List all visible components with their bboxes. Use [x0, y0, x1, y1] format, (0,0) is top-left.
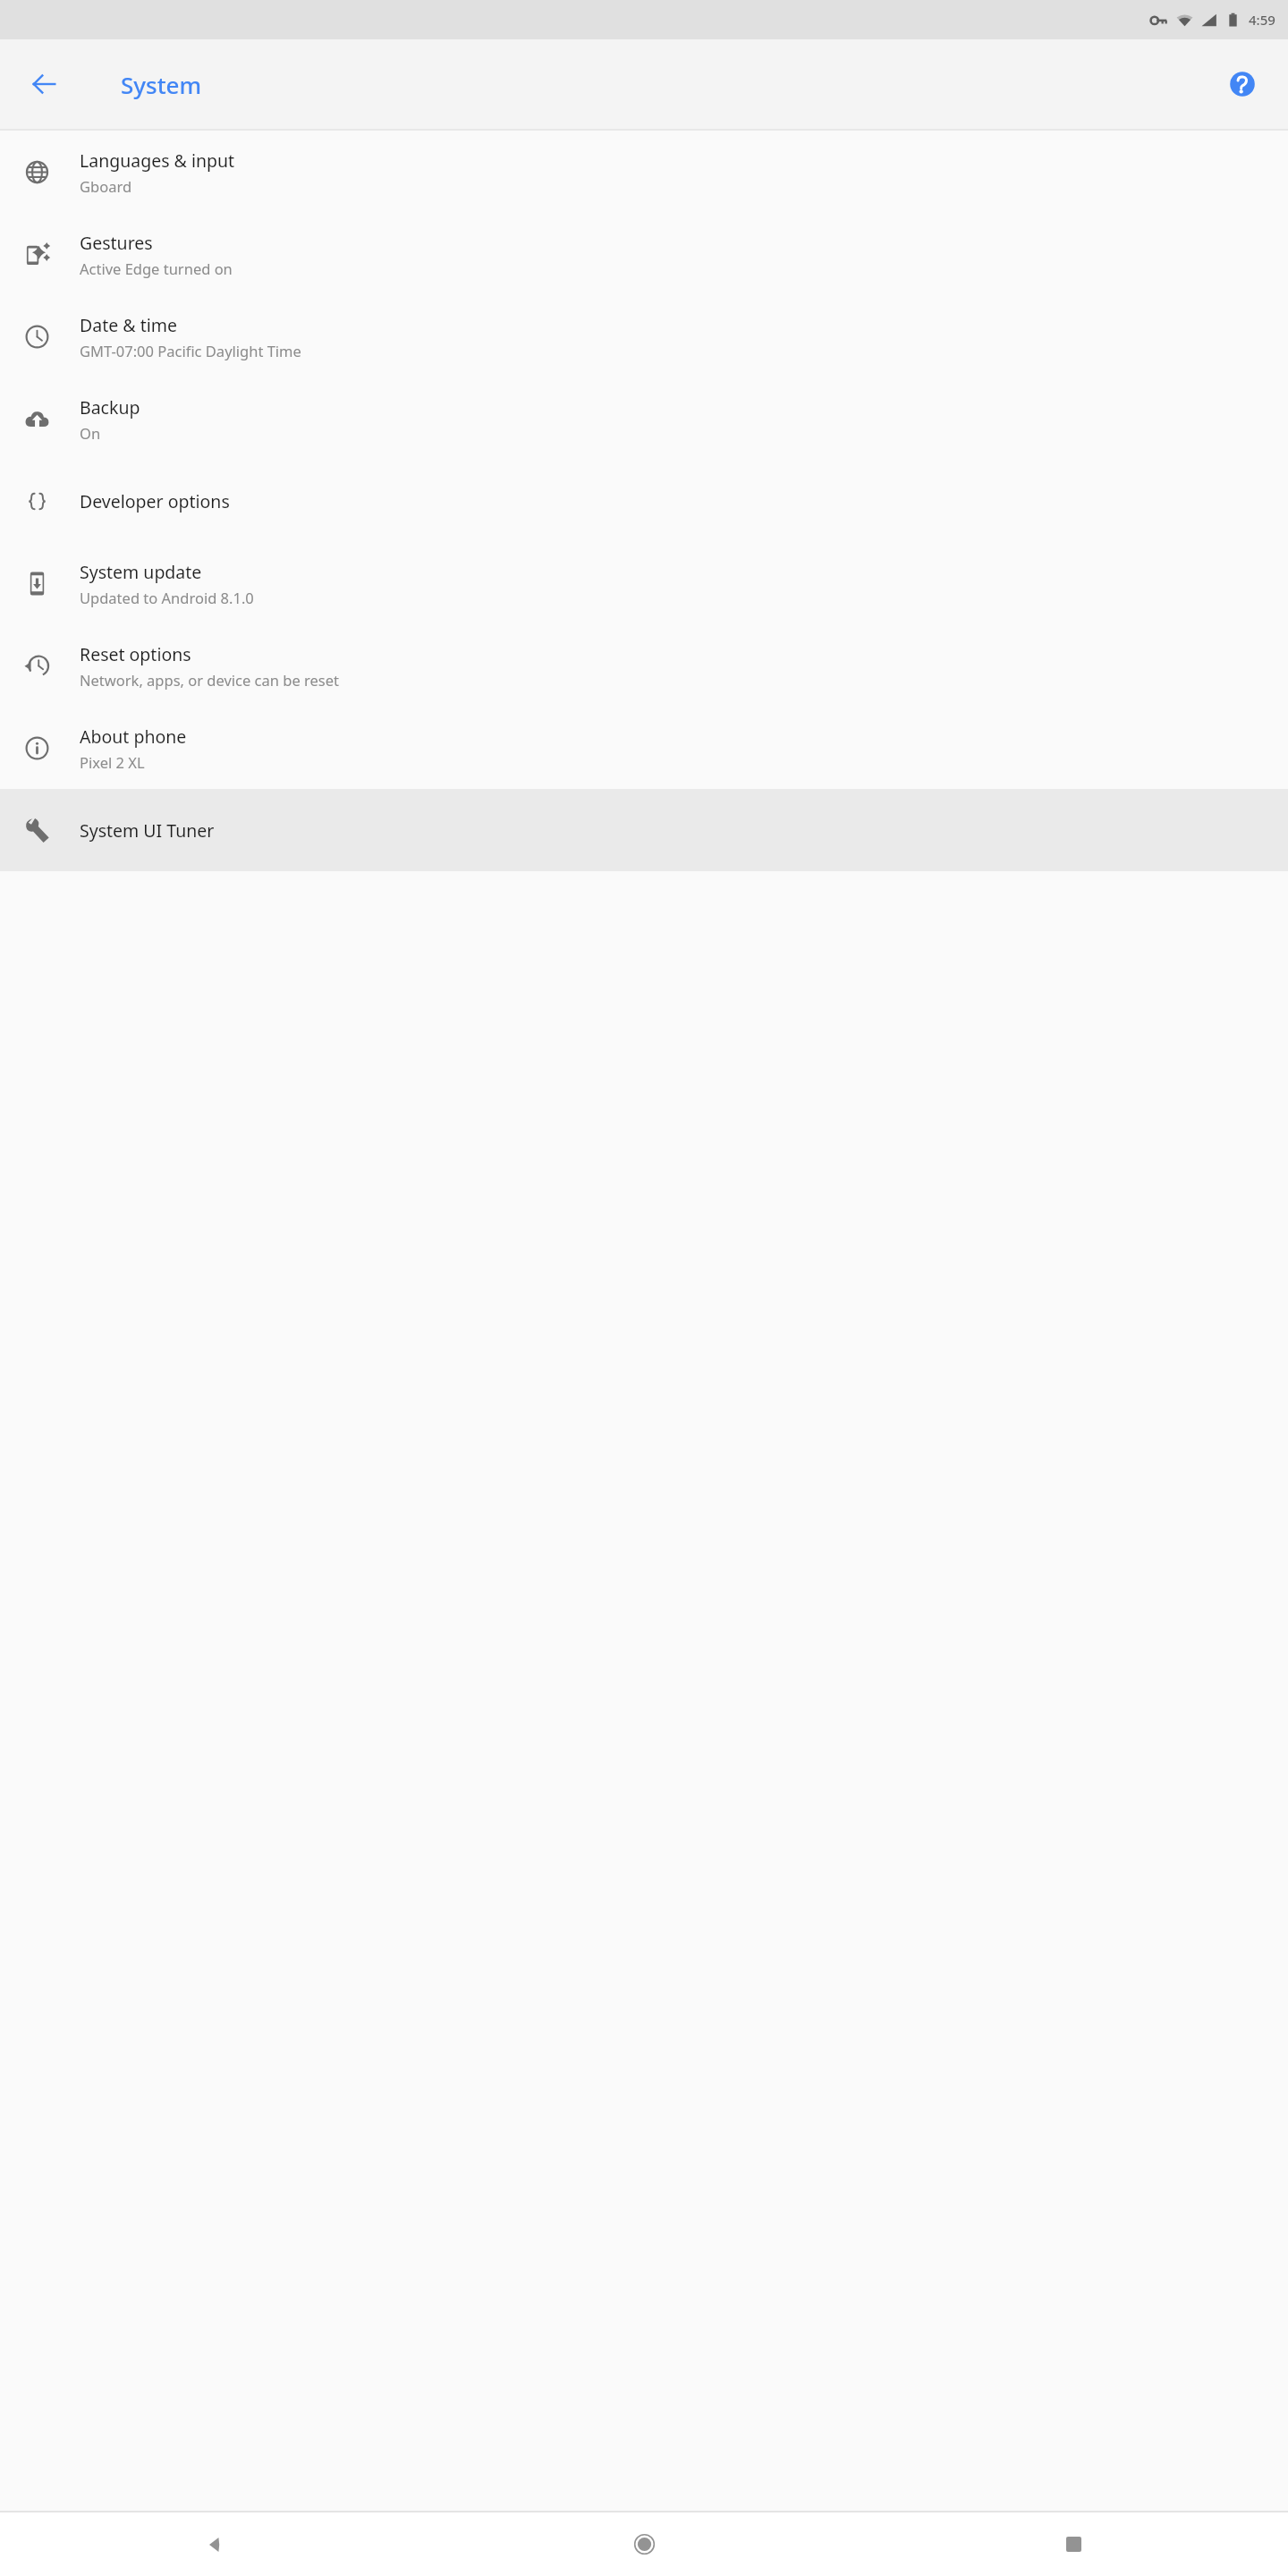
button[interactable]: Recent apps: [859, 2512, 1288, 2576]
staticText: Pixel 2 XL: [80, 752, 145, 772]
button[interactable]: Back: [0, 2512, 429, 2576]
staticText: Reset options: [80, 642, 191, 666]
button[interactable]: System update: [0, 542, 1288, 624]
staticText: System update: [80, 560, 202, 584]
button[interactable]: Help: [1216, 58, 1268, 110]
staticText: 4:59: [1249, 11, 1275, 29]
staticText: Developer options: [80, 489, 230, 513]
staticText: About phone: [80, 724, 187, 749]
button[interactable]: Backup: [0, 377, 1288, 460]
staticText: Active Edge turned on: [80, 258, 233, 278]
button[interactable]: Gestures: [0, 213, 1288, 295]
button[interactable]: Home: [429, 2512, 859, 2576]
staticText: System UI Tuner: [80, 818, 215, 843]
staticText: On: [80, 423, 101, 443]
button[interactable]: Reset options: [0, 624, 1288, 707]
staticText: Languages & input: [80, 148, 235, 173]
button[interactable]: About phone: [0, 707, 1288, 789]
staticText: System: [121, 69, 202, 100]
staticText: Updated to Android 8.1.0: [80, 588, 254, 607]
button[interactable]: Developer options: [0, 460, 1288, 542]
button[interactable]: Languages & input: [0, 131, 1288, 213]
button[interactable]: Back: [18, 58, 70, 110]
button[interactable]: Date & time: [0, 295, 1288, 377]
staticText: Backup: [80, 395, 140, 419]
staticText: Gestures: [80, 231, 153, 255]
staticText: Network, apps, or device can be reset: [80, 670, 339, 690]
staticText: Gboard: [80, 176, 132, 196]
staticText: GMT-07:00 Pacific Daylight Time: [80, 341, 301, 360]
button[interactable]: System UI Tuner: [0, 789, 1288, 871]
staticText: Date & time: [80, 313, 177, 337]
